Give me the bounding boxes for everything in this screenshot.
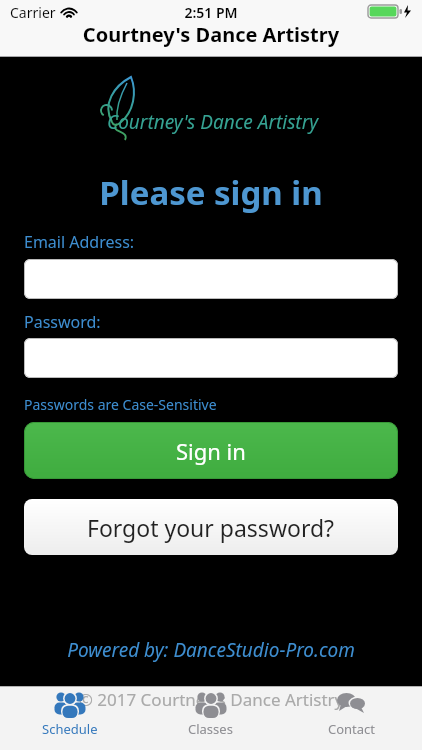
button[interactable] — [24, 259, 398, 299]
staticText: 2:51 PM — [0, 3, 422, 22]
staticText: Schedule — [42, 720, 98, 738]
staticText: Sign in — [176, 436, 246, 466]
button[interactable] — [24, 338, 398, 378]
staticText: Courtney's Dance Artistry — [0, 21, 422, 48]
staticText: © 2017 Courtney's Dance Artistry — [0, 688, 422, 711]
staticText: Please sign in — [0, 170, 422, 215]
staticText: Carrier — [10, 3, 56, 22]
button[interactable]: Schedule — [0, 686, 140, 750]
staticText: Forgot your password? — [87, 512, 335, 543]
staticText: Passwords are Case-Sensitive — [24, 395, 217, 414]
button[interactable]: Contact — [281, 686, 422, 750]
staticText: Classes — [188, 720, 233, 738]
button[interactable]: Powered by: DanceStudio-Pro.com — [0, 637, 422, 663]
staticText: Email Address: — [24, 231, 135, 253]
staticText: Courtney's Dance Artistry — [107, 109, 319, 135]
button[interactable]: Sign in — [24, 422, 398, 479]
button[interactable]: Classes — [140, 686, 281, 750]
staticText: Password: — [24, 311, 101, 333]
button[interactable]: Forgot your password? — [24, 499, 398, 555]
staticText: Contact — [328, 720, 376, 738]
